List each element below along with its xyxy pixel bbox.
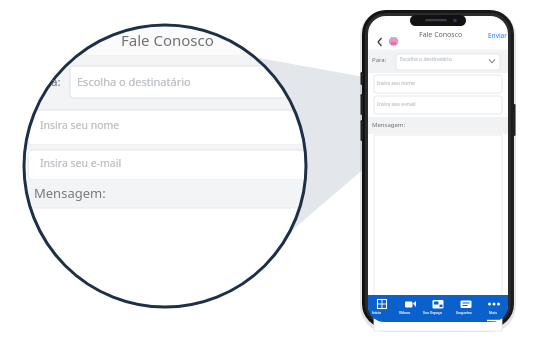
button[interactable]: Escolha o destinatário — [368, 51, 511, 68]
button[interactable]: Back — [367, 22, 381, 36]
staticText: Insira seu nome — [40, 118, 120, 132]
staticText: Insira seu e-mail — [377, 101, 416, 108]
button[interactable]: Enquetes — [452, 295, 480, 322]
staticText: Escolha o destinatário — [77, 74, 191, 89]
staticText: Mais — [489, 310, 497, 315]
button[interactable]: Mais — [480, 295, 508, 322]
staticText: Mensagem: — [34, 184, 106, 202]
button[interactable]: Seu Espaço — [424, 295, 452, 322]
button[interactable]: Enviar — [484, 24, 510, 37]
staticText: Para: — [372, 56, 387, 64]
staticText: Enquetes — [456, 310, 472, 315]
staticText: Insira seu nome — [377, 80, 415, 87]
staticText: Fale Conosco — [419, 30, 463, 40]
button[interactable]: Vídeos — [396, 295, 424, 322]
staticText: Enviar — [488, 31, 507, 40]
staticText: Vídeos — [399, 310, 411, 315]
button[interactable]: Fale Conosco preview — [24, 25, 306, 307]
staticText: Fale Conosco — [121, 30, 214, 50]
button[interactable]: Mensagem — [369, 137, 509, 287]
staticText: Inicio — [372, 310, 382, 315]
button[interactable]: Insira seu e-mail — [369, 96, 509, 111]
staticText: Seu Espaço — [423, 310, 442, 315]
button[interactable]: Inicio — [368, 295, 396, 322]
staticText: Escolha o destinatário — [400, 56, 452, 63]
staticText: a: — [51, 74, 61, 90]
staticText: Mensagem: — [372, 121, 406, 129]
staticText: Insira seu e-mail — [40, 156, 122, 170]
button[interactable]: Insira seu nome — [369, 75, 509, 90]
